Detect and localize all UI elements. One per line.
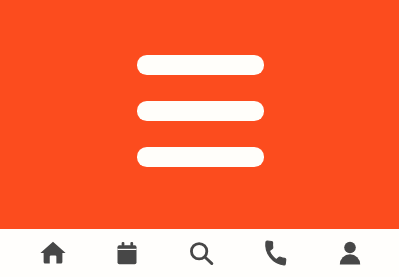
button[interactable]: Profile: [313, 229, 387, 277]
button[interactable]: Menu: [137, 55, 264, 166]
button[interactable]: Calendar: [90, 229, 164, 277]
button[interactable]: Call: [238, 229, 312, 277]
button[interactable]: Search: [164, 229, 238, 277]
button[interactable]: Home: [16, 229, 90, 277]
